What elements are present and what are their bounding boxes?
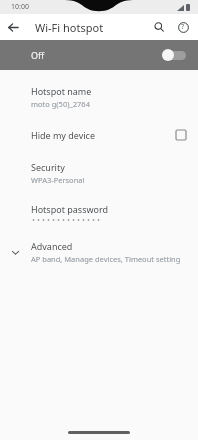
staticText: Hotspot name — [31, 85, 92, 97]
staticText: Security — [31, 161, 65, 173]
button[interactable]: Search — [147, 15, 171, 39]
staticText: Wi-Fi hotspot — [35, 20, 104, 35]
staticText: 10:00 — [11, 2, 29, 12]
staticText: WPA3-Personal — [31, 175, 85, 185]
staticText: AP band, Manage devices, Timeout setting — [31, 254, 181, 264]
button[interactable]: Hotspot password — [0, 194, 198, 231]
staticText: moto g(50)_2764 — [31, 99, 90, 109]
button[interactable]: Off — [0, 40, 198, 70]
staticText: Hotspot password — [31, 203, 109, 215]
staticText: Off — [31, 49, 45, 61]
staticText: ? — [181, 22, 185, 32]
staticText: Advanced — [31, 240, 73, 252]
button[interactable]: Advanced — [0, 231, 198, 273]
button[interactable]: Help — [171, 15, 195, 39]
button[interactable]: Security — [0, 152, 198, 194]
staticText: Hide my device — [31, 129, 96, 141]
button[interactable]: Hide my device — [0, 118, 198, 152]
button[interactable]: Back — [0, 14, 26, 40]
button[interactable]: Hotspot name — [0, 76, 198, 118]
